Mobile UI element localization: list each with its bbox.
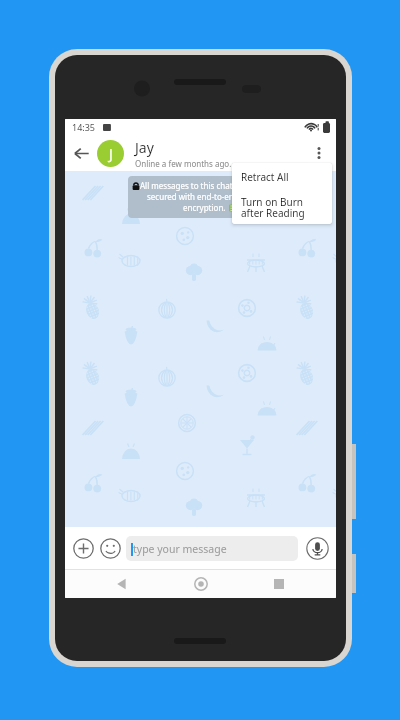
button[interactable]: Back <box>67 139 95 167</box>
staticText: secured with end-to-end <box>147 191 239 202</box>
button[interactable]: Recent apps <box>265 570 293 598</box>
staticText: 14:35 <box>72 121 96 133</box>
staticText: Turn on Burn after Reading <box>241 195 305 220</box>
staticText: Online a few months ago. <box>135 158 232 169</box>
staticText: J <box>109 144 113 163</box>
button[interactable]: Emoji <box>98 536 122 560</box>
staticText: encryption. <box>183 202 226 213</box>
button[interactable]: More options <box>305 139 333 167</box>
button[interactable]: Back <box>108 570 136 598</box>
staticText: Jay <box>135 138 154 157</box>
staticText: type your message <box>133 542 227 556</box>
staticText: Retract All <box>241 170 289 184</box>
button[interactable]: Retract All <box>232 163 332 190</box>
button[interactable]: J <box>97 140 124 167</box>
button[interactable]: Turn on Burn after Reading <box>232 190 332 224</box>
button[interactable]: type your message <box>126 536 298 561</box>
button[interactable]: Add attachment <box>71 536 95 560</box>
button[interactable]: Home <box>187 570 215 598</box>
staticText: All messages to this chat are <box>140 180 239 191</box>
button[interactable]: Record voice message <box>305 536 330 561</box>
